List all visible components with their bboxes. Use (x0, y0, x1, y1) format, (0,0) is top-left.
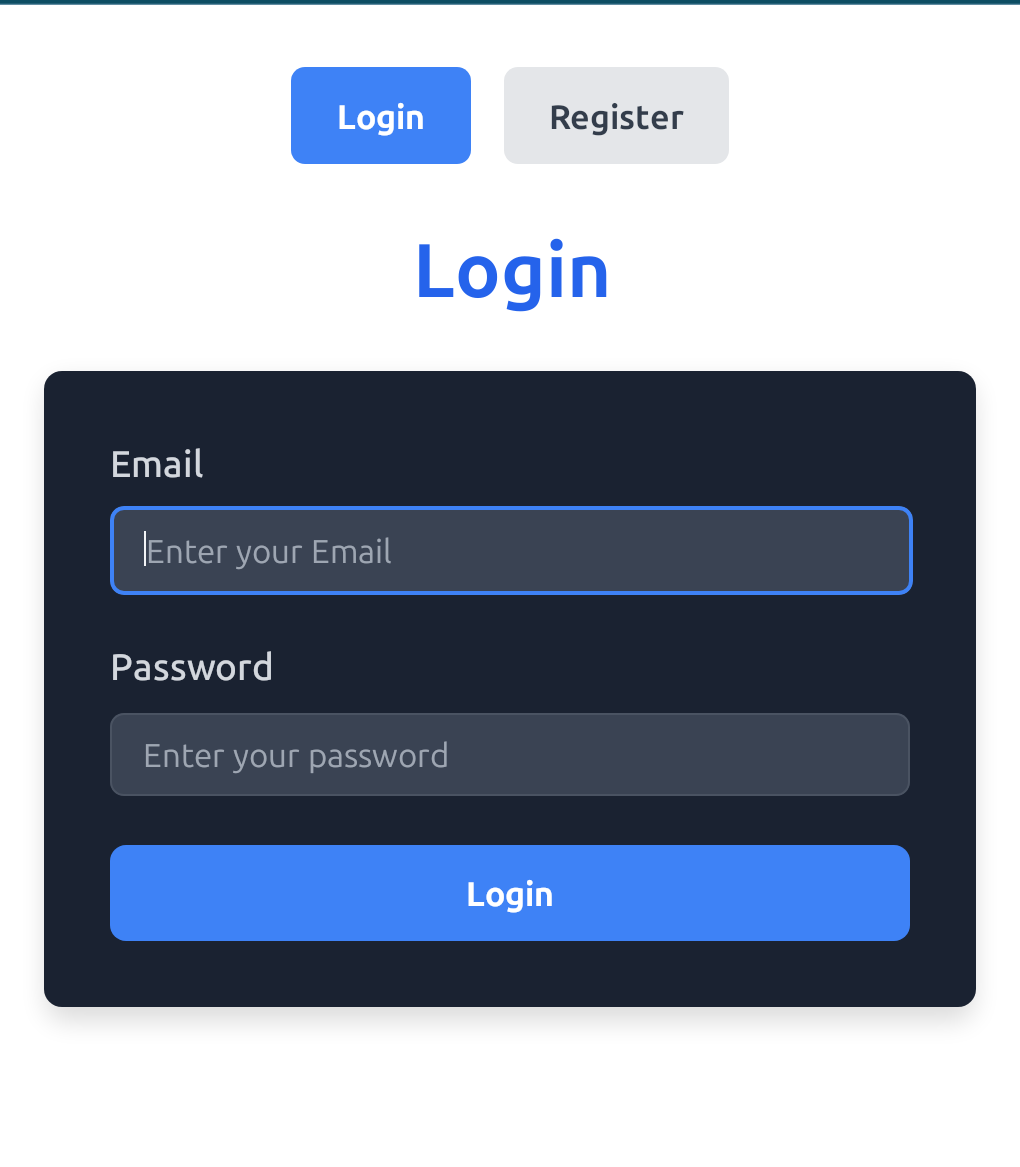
button[interactable] (291, 67, 471, 164)
button[interactable] (110, 845, 910, 941)
button[interactable] (110, 713, 910, 796)
button[interactable] (110, 506, 913, 595)
button[interactable] (504, 67, 729, 164)
